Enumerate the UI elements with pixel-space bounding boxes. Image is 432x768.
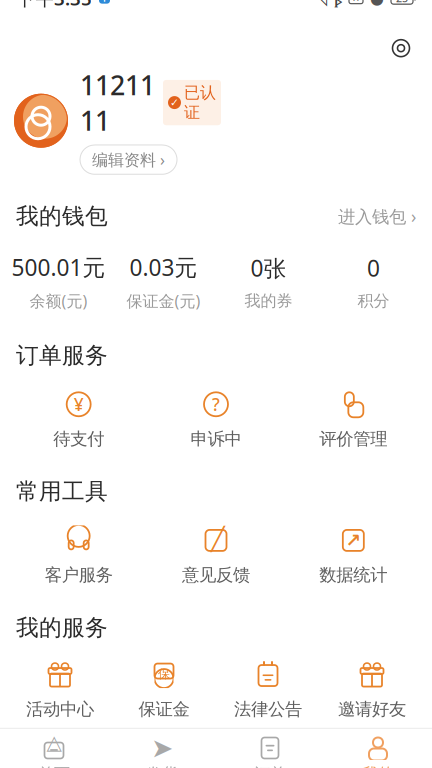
staticText: ◹ <box>314 0 327 8</box>
button[interactable]: 0.03元 <box>111 252 216 311</box>
staticText: 活动中心 <box>26 698 94 720</box>
staticText: 保证金 <box>138 698 189 720</box>
button[interactable]: 客户服务 <box>10 525 147 586</box>
staticText: 0.03元 <box>129 252 197 282</box>
button[interactable]: 0 <box>321 253 426 311</box>
staticText: 常用工具 <box>16 478 108 505</box>
staticText: ✓ <box>170 96 179 109</box>
button[interactable]: 进入钱包 › <box>338 205 416 228</box>
button[interactable]: 头像 <box>14 94 68 148</box>
staticText: 待支付 <box>53 428 104 450</box>
staticText: 下午3:35 <box>16 0 92 11</box>
button[interactable]: 编辑资料 › <box>80 145 177 174</box>
staticText: 订单 <box>254 764 286 768</box>
button[interactable]: 邀请好友 <box>320 659 424 720</box>
button[interactable]: 订单 <box>216 730 324 768</box>
staticText: 申诉中 <box>190 428 241 450</box>
staticText: 500.01元 <box>11 252 105 282</box>
button[interactable]: 0张 <box>216 253 321 311</box>
button[interactable]: 评价管理 <box>285 389 422 450</box>
staticText: 进入钱包 › <box>338 205 416 228</box>
staticText: 编辑资料 › <box>92 149 165 170</box>
staticText: 意见反馈 <box>182 564 250 586</box>
button[interactable]: ¥ <box>10 389 147 450</box>
button[interactable]: ↗ <box>285 525 422 586</box>
staticText: 1121111 <box>80 67 155 138</box>
staticText: 25 <box>396 0 408 5</box>
button[interactable]: 活动中心 <box>8 659 112 720</box>
staticText: 我的券 <box>244 291 292 311</box>
staticText: × <box>352 0 359 6</box>
button[interactable]: 我的 <box>324 730 432 768</box>
staticText: ➤ <box>151 733 173 763</box>
staticText: ╱ <box>211 526 225 552</box>
button[interactable]: ╱ <box>147 525 285 586</box>
staticText: 积分 <box>357 291 389 311</box>
button[interactable]: 保 <box>112 659 216 720</box>
button[interactable]: 设置 <box>384 31 418 65</box>
staticText: 首页 <box>38 764 70 768</box>
staticText: ¥ <box>74 393 84 416</box>
staticText: 已认证 <box>184 83 216 122</box>
staticText: 我的钱包 <box>16 202 108 230</box>
staticText: 我的服务 <box>16 614 108 641</box>
staticText: 评价管理 <box>319 428 387 450</box>
staticText: ? <box>212 393 220 416</box>
button[interactable]: △ <box>0 730 108 768</box>
staticText: 数据统计 <box>319 564 387 586</box>
staticText: 邀请好友 <box>338 698 406 720</box>
staticText: 保 <box>158 667 170 681</box>
staticText: ᛒ <box>334 0 342 8</box>
staticText: 0 <box>367 253 380 283</box>
staticText: 保证金(元) <box>126 290 200 311</box>
staticText: 法律公告 <box>234 698 302 720</box>
staticText: 0张 <box>250 253 286 283</box>
button[interactable]: ? <box>147 389 285 450</box>
staticText: 客户服务 <box>45 564 113 586</box>
staticText: ◕ <box>370 0 384 7</box>
staticText: △ <box>46 731 61 754</box>
staticText: ↗ <box>345 530 361 551</box>
staticText: 发货 <box>146 764 178 768</box>
staticText: 余额(元) <box>29 290 87 311</box>
staticText: 我的 <box>362 764 394 768</box>
button[interactable]: 500.01元 <box>6 252 111 311</box>
button[interactable]: ➤ <box>108 730 216 768</box>
staticText: 订单服务 <box>16 341 108 369</box>
button[interactable]: 法律公告 <box>216 659 320 720</box>
staticText: ↑ <box>100 0 109 4</box>
